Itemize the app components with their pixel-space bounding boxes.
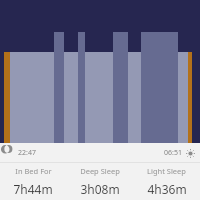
other: Bedtime xyxy=(5,149,14,158)
button[interactable]: In Bed For xyxy=(0,164,66,199)
staticText: 06:51 xyxy=(164,148,182,158)
button[interactable] xyxy=(0,0,200,143)
staticText: In Bed For xyxy=(15,166,52,176)
staticText: 3h08m xyxy=(80,181,120,197)
staticText: 7h44m xyxy=(13,181,53,197)
button[interactable]: Bedtime xyxy=(0,143,200,163)
staticText: 22:47 xyxy=(18,148,36,158)
button[interactable]: Deep Sleep xyxy=(66,164,133,199)
other: Wake time xyxy=(186,149,195,158)
button[interactable]: Light Sleep xyxy=(133,164,200,199)
staticText: Light Sleep xyxy=(147,166,186,176)
staticText: Deep Sleep xyxy=(80,166,120,176)
staticText: 4h36m xyxy=(147,181,187,197)
